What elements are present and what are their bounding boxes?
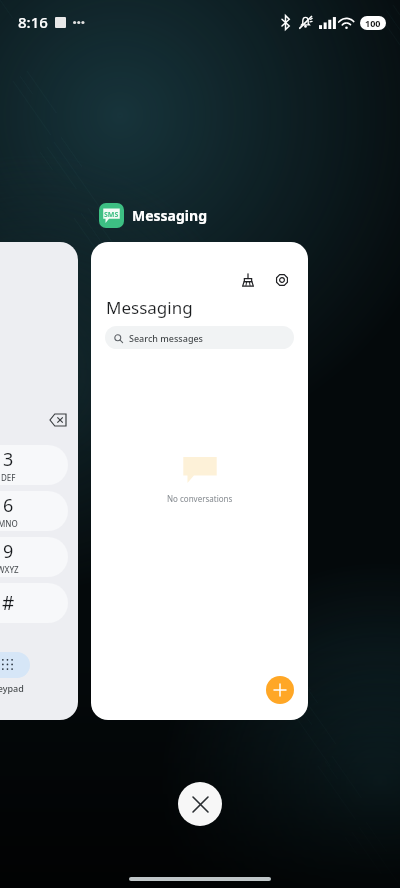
staticText: 9 xyxy=(3,539,14,564)
button[interactable]: 6 xyxy=(0,491,68,531)
staticText: WXYZ xyxy=(0,564,19,575)
button[interactable]: Clear all xyxy=(178,782,222,826)
staticText: 8:16 xyxy=(18,12,48,32)
staticText: Messaging xyxy=(132,206,207,225)
button[interactable]: Clean up xyxy=(91,242,308,720)
staticText: Search messages xyxy=(129,332,203,344)
button[interactable]: Search messages xyxy=(105,326,294,349)
button[interactable]: 3 xyxy=(0,242,78,720)
staticText: No conversations xyxy=(167,493,233,504)
button[interactable]: New conversation xyxy=(266,676,294,704)
button[interactable]: 3 xyxy=(0,445,68,485)
button[interactable] xyxy=(0,652,30,678)
staticText: SMS xyxy=(104,210,119,220)
staticText: 100 xyxy=(365,17,381,29)
button[interactable]: 9 xyxy=(0,537,68,577)
staticText: Keypad xyxy=(0,682,24,694)
button[interactable]: Settings xyxy=(270,268,294,292)
staticText: # xyxy=(2,590,15,616)
staticText: 3 xyxy=(3,447,14,472)
staticText: 6 xyxy=(3,493,14,518)
staticText: MNO xyxy=(0,518,18,529)
button[interactable]: Clean up xyxy=(236,268,260,292)
button[interactable]: # xyxy=(0,583,68,623)
staticText: Messaging xyxy=(106,296,193,319)
staticText: DEF xyxy=(1,472,16,483)
button[interactable]: SMS xyxy=(99,203,207,228)
